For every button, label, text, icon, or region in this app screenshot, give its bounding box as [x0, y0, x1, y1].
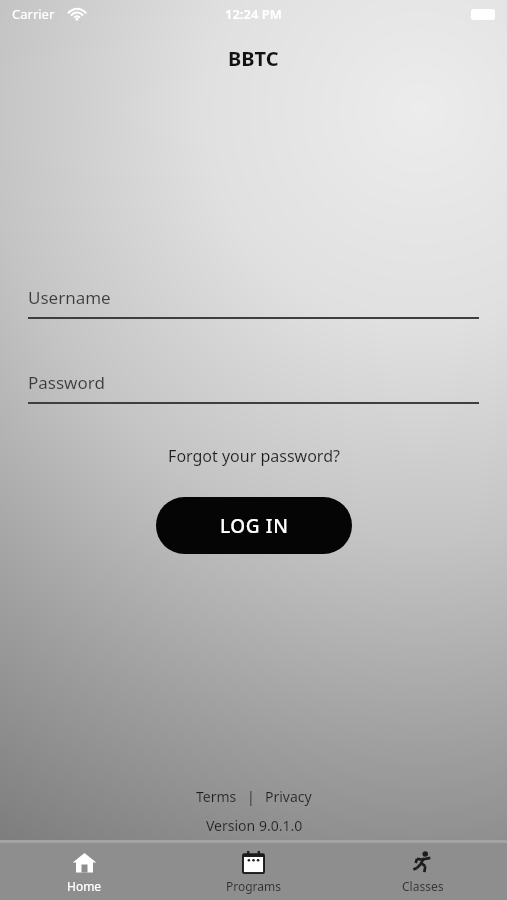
staticText: Carrier [12, 5, 55, 23]
button[interactable]: Home [0, 843, 169, 900]
staticText: BBTC [228, 45, 279, 72]
staticText: Programs [226, 878, 282, 894]
staticText: Home [67, 878, 102, 894]
staticText: Password [28, 371, 105, 394]
staticText: Classes [402, 878, 444, 894]
button[interactable]: Password [28, 371, 479, 404]
button[interactable]: Privacy [261, 785, 316, 808]
button[interactable]: Programs [169, 843, 338, 900]
staticText: Version 9.0.1.0 [206, 816, 303, 835]
button[interactable]: Terms [192, 785, 241, 808]
button[interactable]: Username [28, 286, 479, 319]
button[interactable]: Forgot your password? [160, 443, 348, 469]
button[interactable]: Classes [338, 843, 507, 900]
staticText: Username [28, 286, 111, 309]
staticText: 12:24 PM [225, 5, 282, 23]
button[interactable]: LOG IN [156, 497, 352, 554]
staticText: | [247, 787, 255, 806]
staticText: LOG IN [220, 513, 289, 539]
